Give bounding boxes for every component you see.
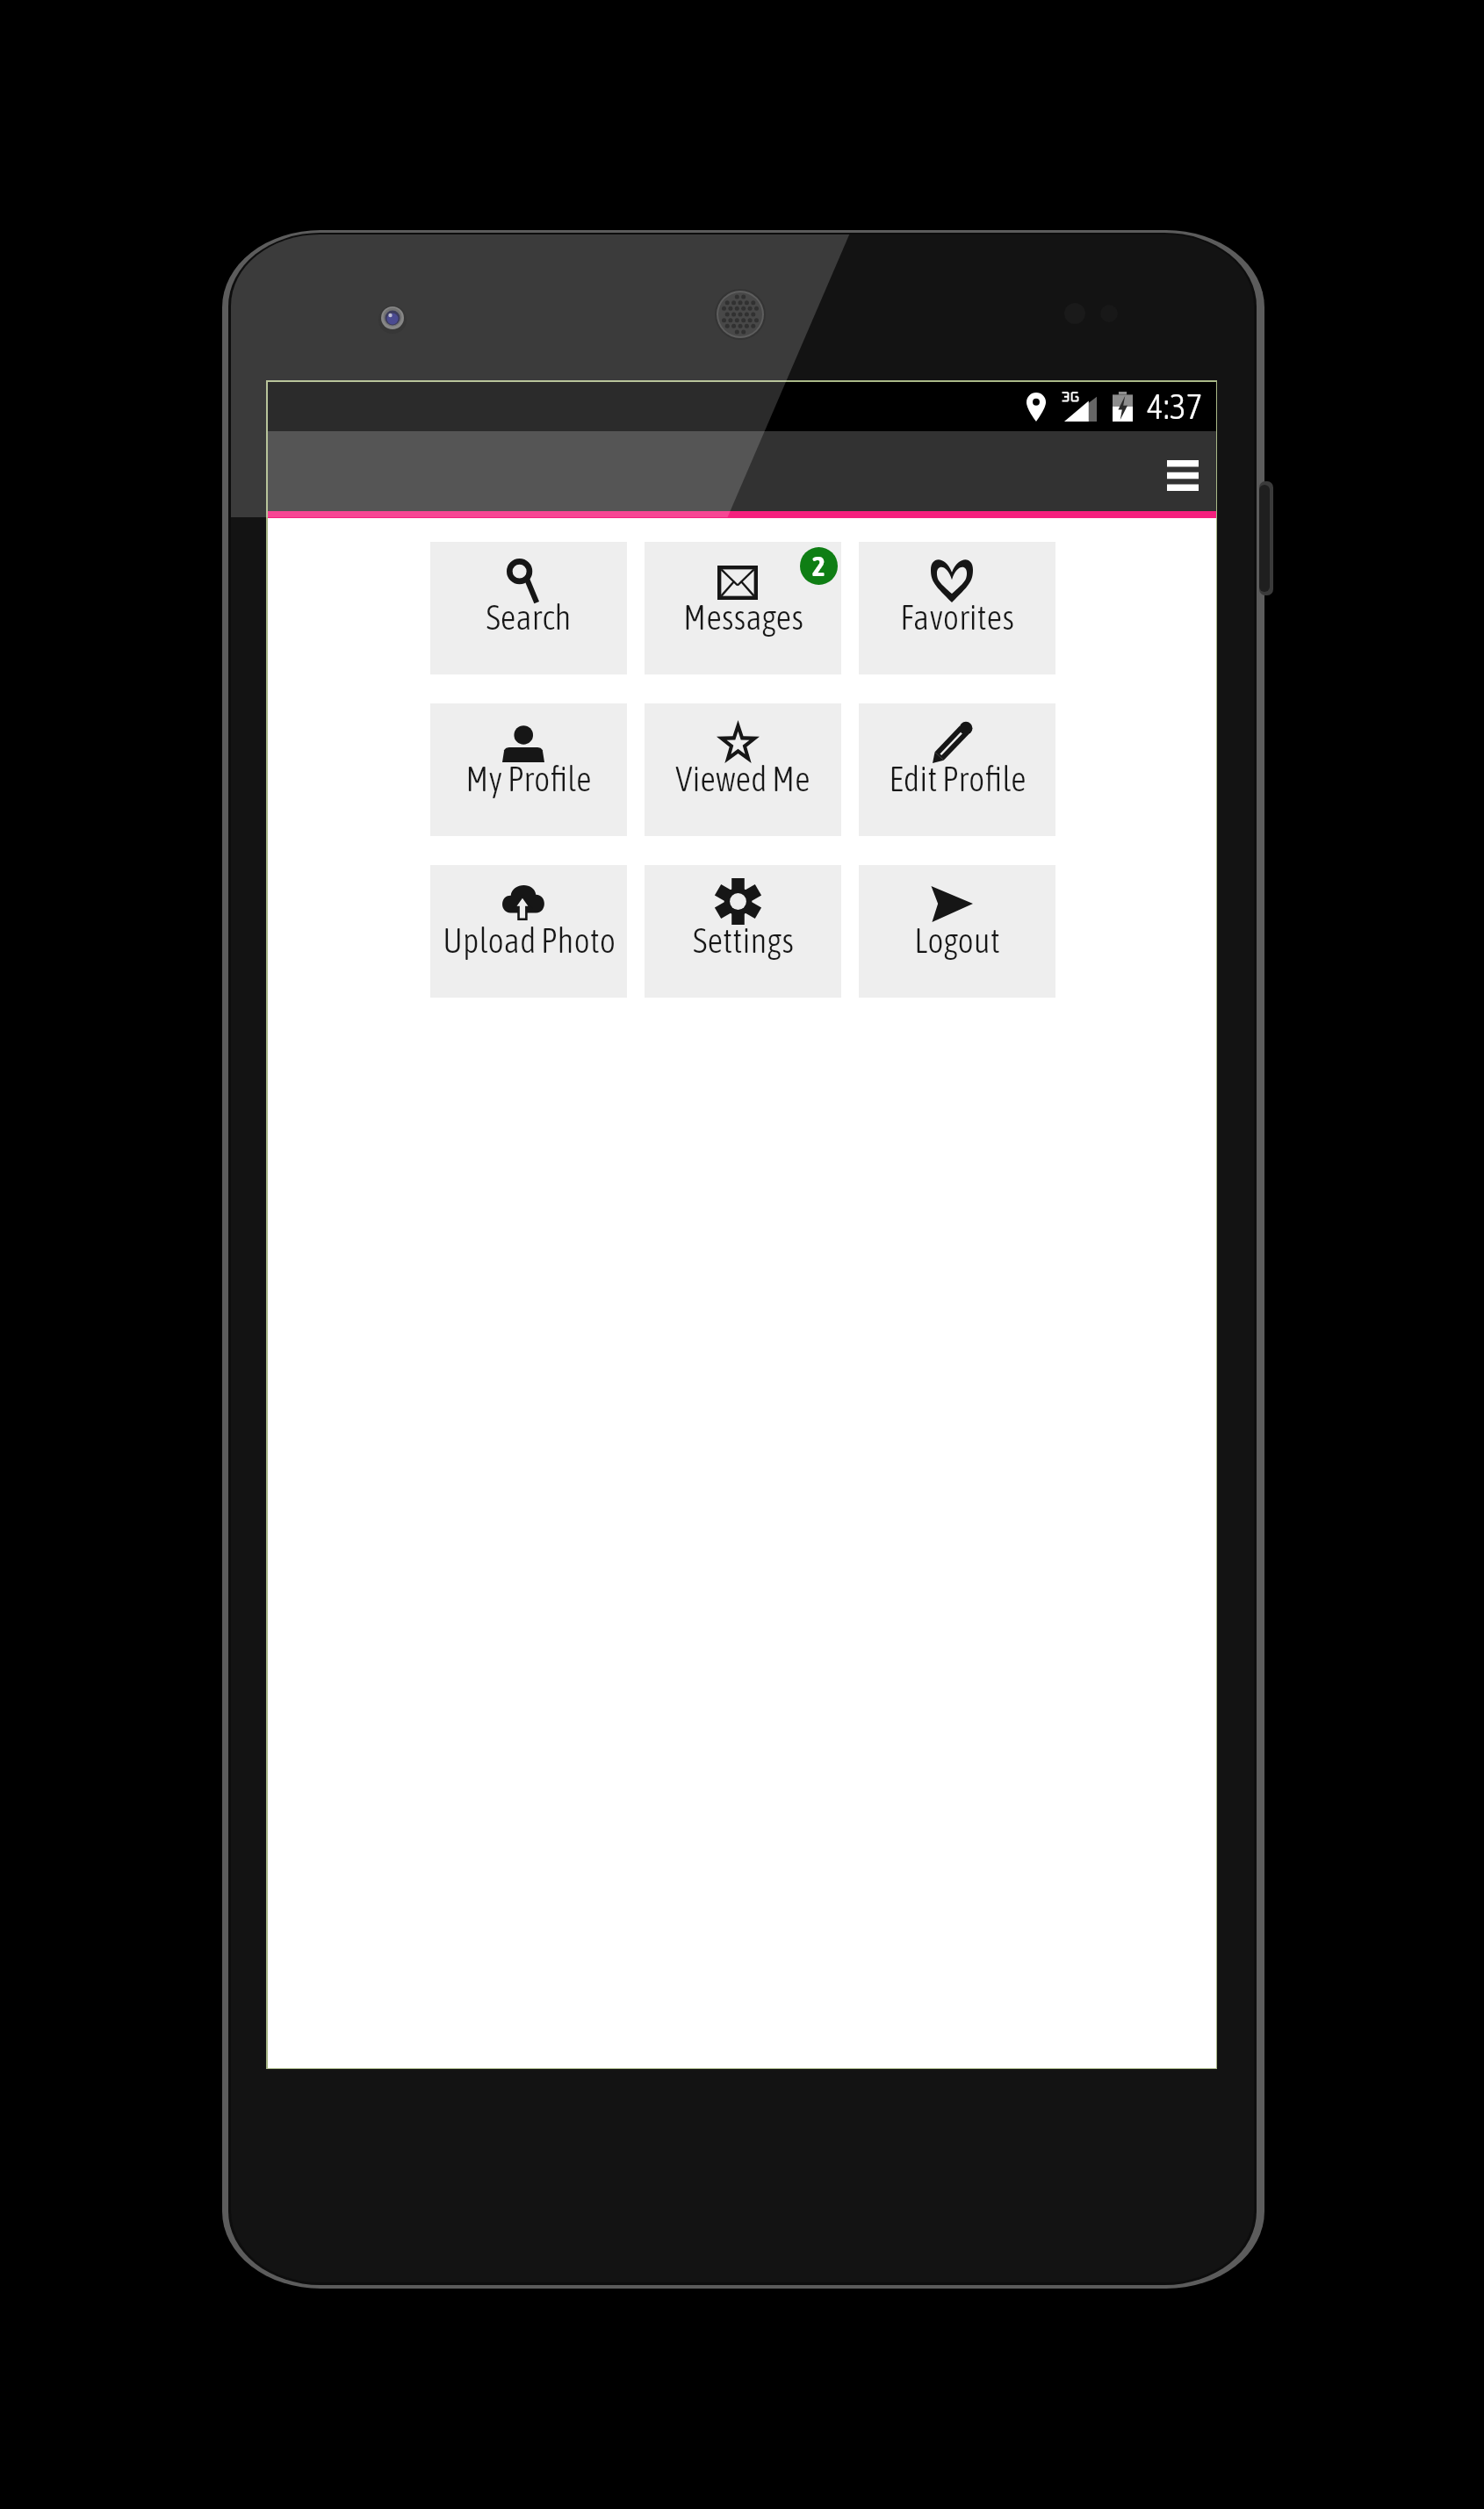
staticText: Logout (914, 921, 1000, 961)
button[interactable]: Upload Photo (430, 865, 627, 998)
staticText: 4:37 (1147, 386, 1203, 427)
staticText: 2 (812, 551, 825, 582)
other: 2 unread messages (800, 547, 838, 585)
button[interactable]: Favorites (859, 542, 1055, 674)
button[interactable]: Settings (645, 865, 841, 998)
staticText: Search (486, 598, 572, 638)
button[interactable]: Logout (859, 865, 1055, 998)
button[interactable]: Messages (645, 542, 841, 674)
button[interactable]: Open navigation menu (1145, 436, 1221, 515)
staticText: Favorites (900, 598, 1014, 638)
staticText: Viewed Me (675, 760, 810, 799)
button[interactable]: Search (430, 542, 627, 674)
button[interactable]: Edit Profile (859, 703, 1055, 836)
staticText: Settings (693, 921, 794, 961)
staticText: Upload Photo (443, 921, 616, 961)
staticText: Edit Profile (889, 760, 1027, 799)
button[interactable]: Viewed Me (645, 703, 841, 836)
staticText: My Profile (465, 760, 592, 799)
staticText: Messages (683, 598, 803, 638)
button[interactable]: My Profile (430, 703, 627, 836)
